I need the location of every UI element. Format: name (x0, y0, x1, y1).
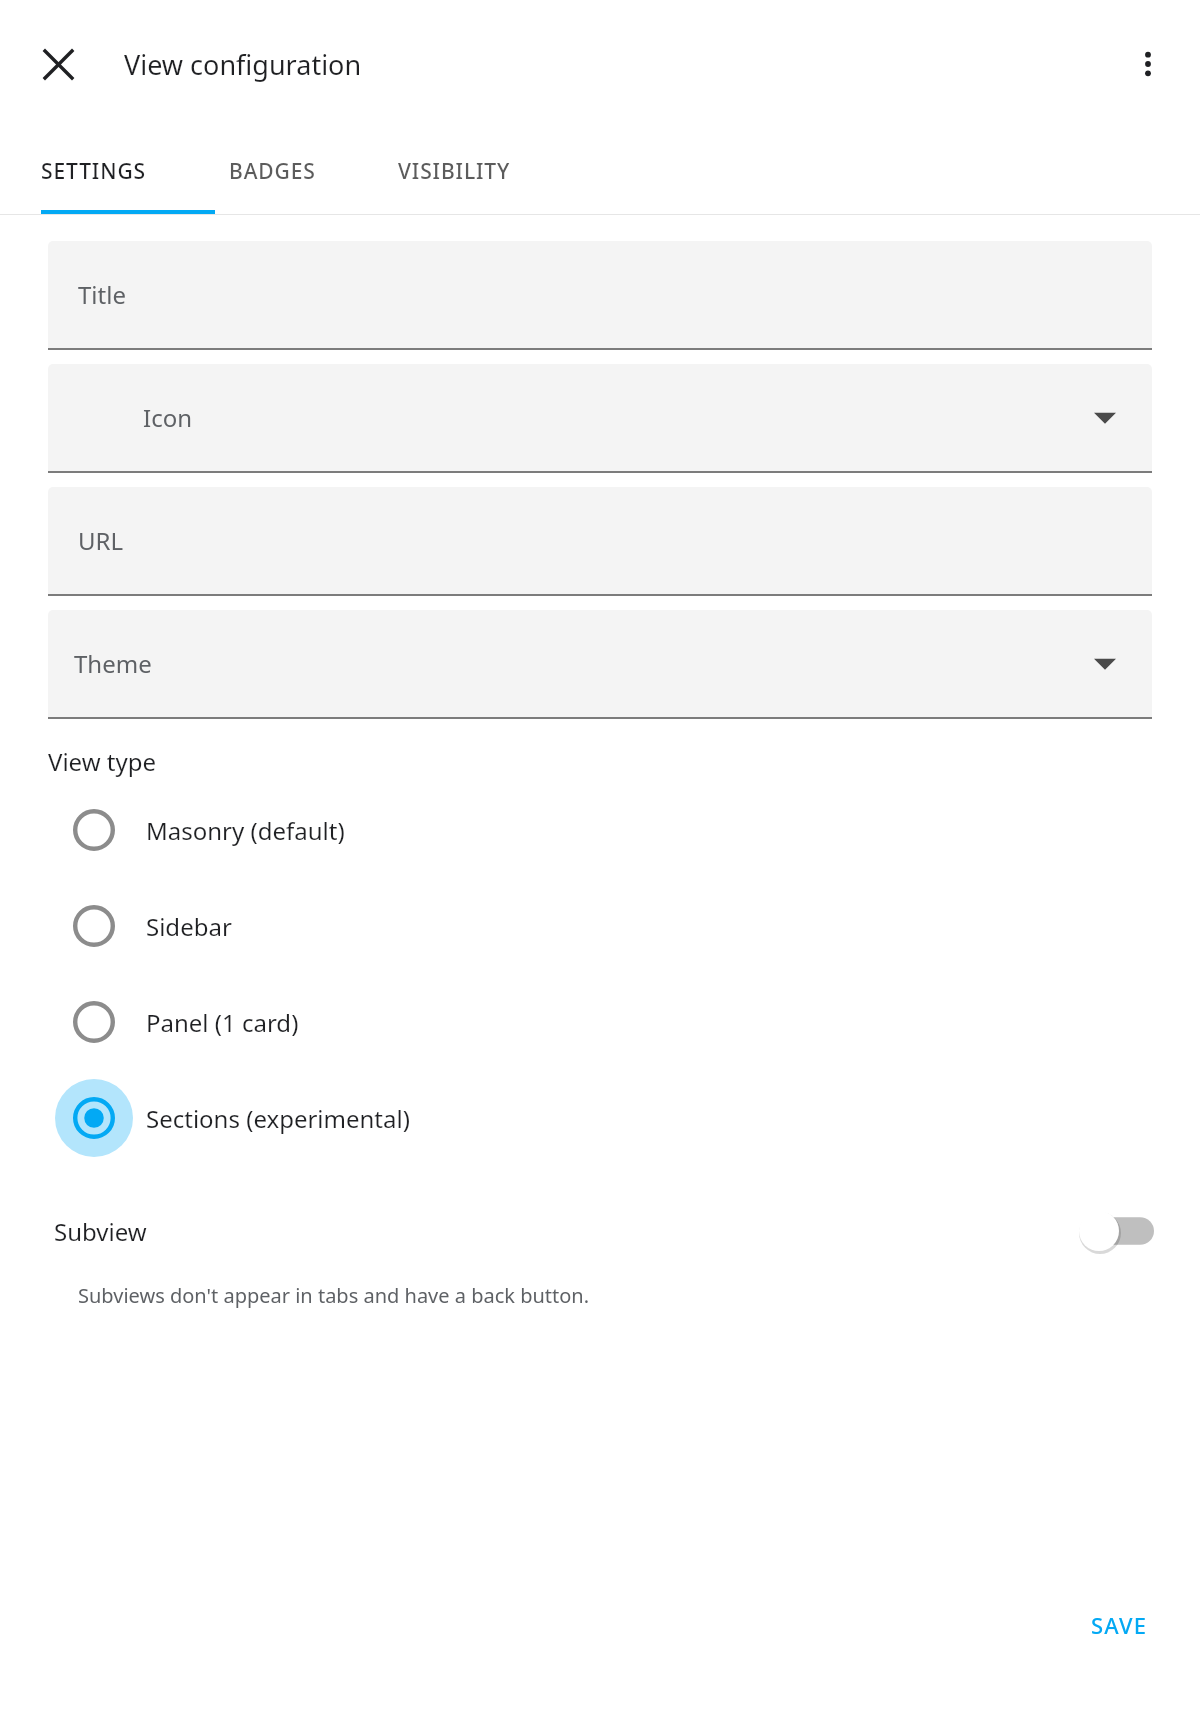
button[interactable]: Masonry (default) (0, 782, 1200, 878)
button[interactable]: SETTINGS (0, 128, 188, 214)
staticText: Sections (experimental) (146, 1102, 410, 1135)
staticText: View configuration (124, 46, 362, 83)
staticText: Masonry (default) (146, 814, 345, 847)
staticText: View type (48, 745, 156, 778)
button[interactable]: More options (1120, 36, 1176, 92)
button[interactable]: BADGES (188, 128, 357, 214)
staticText: BADGES (229, 157, 316, 186)
staticText: Title (78, 278, 126, 311)
button[interactable]: Sections (experimental) (0, 1070, 1200, 1166)
staticText: SETTINGS (41, 157, 147, 186)
staticText: Panel (1 card) (146, 1006, 299, 1039)
button[interactable]: Panel (1 card) (0, 974, 1200, 1070)
staticText: Subview (54, 1215, 147, 1248)
staticText: Sidebar (146, 910, 232, 943)
button[interactable]: VISIBILITY (357, 128, 552, 214)
button[interactable]: Title (48, 241, 1152, 350)
staticText: VISIBILITY (398, 157, 511, 186)
staticText: URL (78, 524, 124, 557)
staticText: Icon (143, 401, 193, 434)
other: Subview toggle (1078, 1210, 1154, 1252)
staticText: Theme (74, 647, 152, 680)
button[interactable]: SAVE (1069, 1596, 1170, 1654)
staticText: Subviews don't appear in tabs and have a… (78, 1282, 590, 1309)
button[interactable]: Close (28, 34, 88, 94)
button[interactable]: Icon (48, 364, 1152, 473)
button[interactable]: Theme (48, 610, 1152, 719)
staticText: SAVE (1091, 1610, 1148, 1640)
button[interactable]: URL (48, 487, 1152, 596)
button[interactable]: Subview (0, 1192, 1200, 1270)
button[interactable]: Sidebar (0, 878, 1200, 974)
